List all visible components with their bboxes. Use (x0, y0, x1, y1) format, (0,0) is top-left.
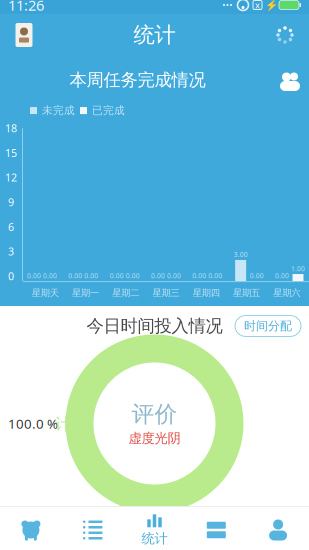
staticText: 本周任务完成情况 (69, 69, 205, 91)
staticText: 0.00 (68, 271, 82, 280)
staticText: 0.00 (275, 271, 289, 280)
staticText: 3.00 (234, 250, 248, 259)
staticText: 0.00 (84, 271, 98, 280)
staticText: 0.00 (110, 271, 124, 280)
staticText: 星期四 (193, 287, 220, 299)
staticText: 18 (5, 121, 17, 135)
staticText: 0.00 (27, 271, 41, 280)
staticText: 星期一 (72, 287, 99, 299)
staticText: 3 (8, 244, 14, 259)
button[interactable]: 刷新 (265, 15, 305, 55)
staticText: 0.00 (208, 271, 222, 280)
staticText: 0.00 (43, 271, 57, 280)
staticText: 0.00 (151, 271, 165, 280)
staticText: 100.0 % (8, 415, 58, 432)
staticText: 星期三 (152, 287, 179, 299)
staticText: 星期六 (273, 287, 300, 299)
staticText: 6 (8, 220, 14, 234)
staticText: 星期天 (32, 287, 59, 299)
button[interactable]: 头像 (4, 15, 44, 55)
staticText: 0.00 (126, 271, 140, 280)
staticText: 0.00 (192, 271, 206, 280)
staticText: 统计 (133, 22, 175, 48)
staticText: 0 (8, 269, 14, 283)
staticText: 0.00 (167, 271, 181, 280)
staticText: x (255, 0, 260, 11)
staticText: 1.00 (291, 264, 305, 273)
button[interactable]: 统计 (124, 506, 185, 550)
staticText: 统计 (141, 530, 167, 547)
staticText: 评价 (131, 400, 177, 428)
staticText: 已完成 (92, 104, 125, 117)
staticText: 15 (5, 146, 17, 160)
staticText: 12 (5, 170, 17, 185)
button[interactable]: 任务列表 (62, 506, 124, 550)
button[interactable]: 好友 (275, 66, 305, 94)
staticText: 时间分配 (244, 319, 292, 333)
staticText: 9 (8, 195, 14, 209)
staticText: ⚡ (265, 0, 278, 11)
staticText: 虚度光阴 (128, 430, 180, 447)
staticText: 0.00 (250, 271, 264, 280)
staticText: 11:26 (8, 0, 44, 15)
staticText: 今日时间投入情况 (86, 315, 222, 337)
staticText: 星期五 (233, 287, 260, 299)
staticText: 计划(24 (55, 413, 110, 434)
button[interactable]: 时间分配 (235, 316, 301, 336)
button[interactable]: 闹钟 (0, 506, 62, 550)
staticText: 未完成 (42, 104, 75, 117)
button[interactable]: 计划 (185, 506, 247, 550)
button[interactable]: 我的 (247, 506, 309, 550)
staticText: 星期二 (112, 287, 139, 299)
